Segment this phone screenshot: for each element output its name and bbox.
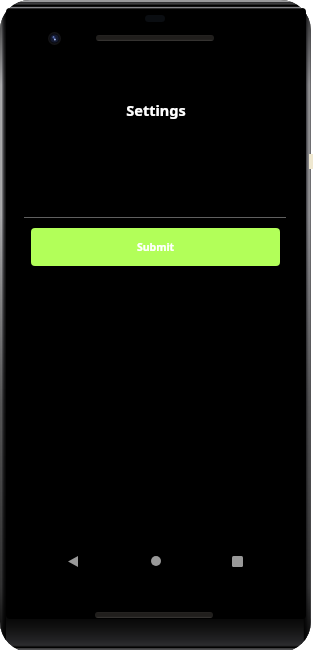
button[interactable]: Submit: [31, 228, 280, 266]
button[interactable]: Recent apps: [215, 545, 259, 577]
staticText: Submit: [137, 240, 175, 254]
staticText: Settings: [6, 100, 306, 120]
button[interactable]: Home: [134, 545, 178, 577]
button[interactable]: Back: [51, 545, 95, 577]
